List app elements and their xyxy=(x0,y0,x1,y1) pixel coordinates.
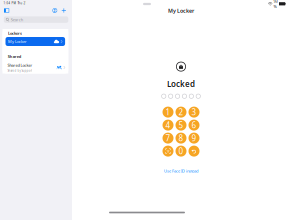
staticText: Shared xyxy=(8,54,22,59)
staticText: Shared Locker xyxy=(7,62,32,68)
button[interactable]: 0 xyxy=(174,145,187,158)
button[interactable]: My Locker xyxy=(5,37,65,46)
staticText: 6 xyxy=(191,120,196,130)
staticText: 4 xyxy=(165,120,170,130)
staticText: Lockers xyxy=(8,30,22,36)
button[interactable]: 9 xyxy=(187,132,200,145)
staticText: 3 xyxy=(191,107,196,117)
button[interactable]: Face ID xyxy=(161,145,174,158)
button[interactable]: New Locker xyxy=(60,7,68,14)
staticText: 1 xyxy=(165,107,170,117)
staticText: 93% xyxy=(274,0,278,9)
button[interactable]: Delete xyxy=(187,145,200,158)
button[interactable]: Use Face ID instead xyxy=(159,168,203,174)
button[interactable]: 4 xyxy=(161,119,174,132)
staticText: My Locker xyxy=(168,7,194,14)
button[interactable]: 2 xyxy=(174,106,187,119)
staticText: My Locker xyxy=(8,39,27,44)
staticText: 0 xyxy=(178,146,183,156)
staticText: 5 xyxy=(178,120,183,130)
staticText: Shared by Support xyxy=(7,69,32,72)
staticText: 2 xyxy=(178,107,183,117)
staticText: 9 xyxy=(191,133,196,143)
button[interactable]: 5 xyxy=(174,119,187,132)
button[interactable]: Shared Locker xyxy=(2,62,68,73)
button[interactable]: 7 xyxy=(161,132,174,145)
staticText: 8 xyxy=(178,133,183,143)
staticText: 7 xyxy=(165,133,170,143)
staticText: Locked xyxy=(167,79,195,89)
staticText: Search xyxy=(11,17,23,22)
staticText: 1:04 PM Thu 21 xyxy=(3,1,27,5)
button[interactable]: 1 xyxy=(161,106,174,119)
button[interactable]: Account xyxy=(51,7,59,14)
button[interactable]: 6 xyxy=(187,119,200,132)
button[interactable]: Hide Sidebar xyxy=(3,7,11,14)
staticText: Use Face ID instead xyxy=(164,168,198,174)
button[interactable]: 8 xyxy=(174,132,187,145)
button[interactable]: 3 xyxy=(187,106,200,119)
